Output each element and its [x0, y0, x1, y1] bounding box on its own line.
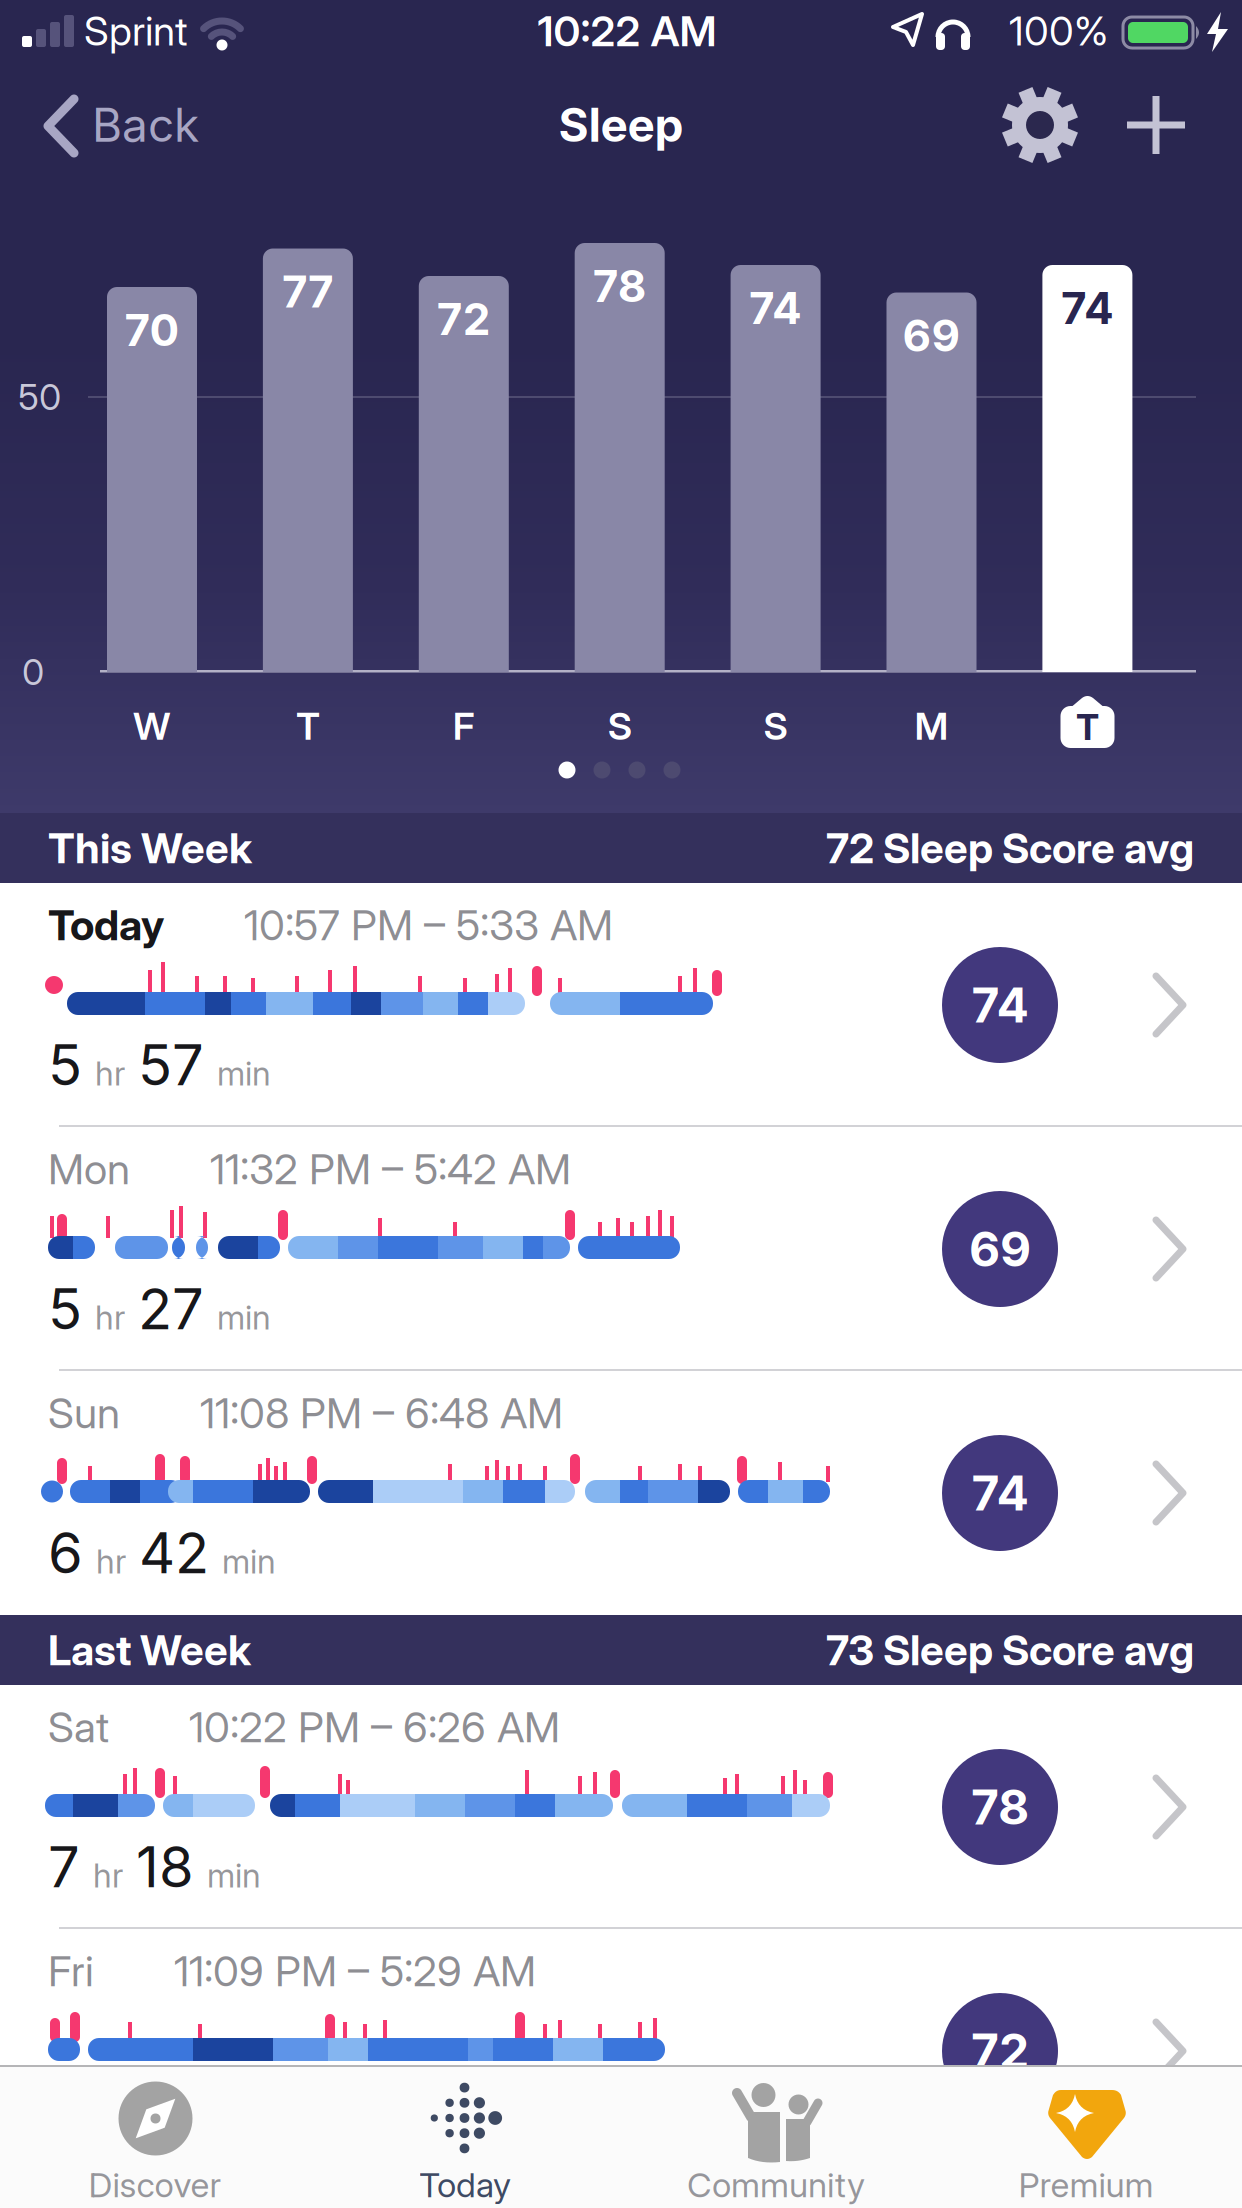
staticText: 70: [124, 304, 179, 356]
staticText: 74: [971, 977, 1028, 1033]
staticText: Back: [92, 98, 199, 152]
staticText: This Week: [48, 823, 252, 873]
staticText: 10:22 PM – 6:26 AM: [189, 1702, 560, 1752]
staticText: Today: [48, 900, 164, 950]
staticText: Community: [687, 2165, 865, 2205]
staticText: T: [296, 704, 320, 748]
staticText: T: [1076, 706, 1099, 748]
staticText: 77: [282, 265, 334, 317]
staticText: 20: [139, 2078, 208, 2144]
staticText: Sat: [48, 1702, 109, 1752]
staticText: 11:32 PM – 5:42 AM: [210, 1144, 571, 1194]
staticText: 18: [136, 1834, 194, 1900]
staticText: Today: [419, 2165, 511, 2205]
staticText: 72 Sleep Score avg: [826, 823, 1194, 873]
staticText: 10:57 PM – 5:33 AM: [244, 900, 613, 950]
staticText: 5: [48, 1032, 82, 1098]
staticText: 78: [593, 260, 647, 312]
staticText: hr: [96, 2100, 126, 2139]
staticText: hr: [93, 1856, 123, 1895]
staticText: M: [914, 704, 948, 748]
staticText: 50: [18, 376, 61, 418]
staticText: 5: [48, 1276, 82, 1342]
staticText: 74: [1061, 282, 1114, 334]
staticText: hr: [95, 1054, 125, 1093]
staticText: Sprint: [84, 7, 188, 55]
staticText: 72: [437, 293, 491, 345]
staticText: min: [217, 1054, 271, 1093]
staticText: F: [453, 704, 475, 748]
staticText: Sleep: [558, 98, 683, 152]
staticText: 72: [971, 2023, 1029, 2079]
staticText: 69: [969, 1221, 1031, 1277]
staticText: 6: [48, 1520, 83, 1586]
staticText: Premium: [1018, 2165, 1153, 2205]
staticText: S: [764, 704, 788, 748]
staticText: 42: [139, 1520, 209, 1586]
staticText: 100%: [1009, 7, 1108, 55]
staticText: min: [222, 1542, 276, 1581]
staticText: S: [608, 704, 632, 748]
staticText: Sun: [48, 1388, 120, 1438]
staticText: 57: [138, 1032, 204, 1098]
staticText: 27: [138, 1276, 204, 1342]
staticText: 11:08 PM – 6:48 AM: [200, 1388, 563, 1438]
staticText: Fri: [48, 1946, 94, 1996]
staticText: 11:09 PM – 5:29 AM: [174, 1946, 536, 1996]
staticText: 73 Sleep Score avg: [826, 1625, 1194, 1675]
staticText: Last Week: [48, 1625, 251, 1675]
staticText: 74: [971, 1465, 1028, 1521]
staticText: hr: [95, 1298, 125, 1337]
staticText: hr: [96, 1542, 126, 1581]
staticText: min: [207, 1856, 261, 1895]
staticText: W: [133, 704, 171, 748]
staticText: 78: [971, 1779, 1029, 1835]
staticText: Mon: [48, 1144, 130, 1194]
staticText: 10:22 AM: [537, 6, 716, 56]
staticText: Discover: [88, 2165, 221, 2205]
staticText: 7: [48, 1834, 80, 1900]
staticText: min: [217, 1298, 271, 1337]
staticText: 69: [902, 309, 960, 361]
staticText: 74: [749, 282, 802, 334]
staticText: 0: [22, 651, 44, 693]
